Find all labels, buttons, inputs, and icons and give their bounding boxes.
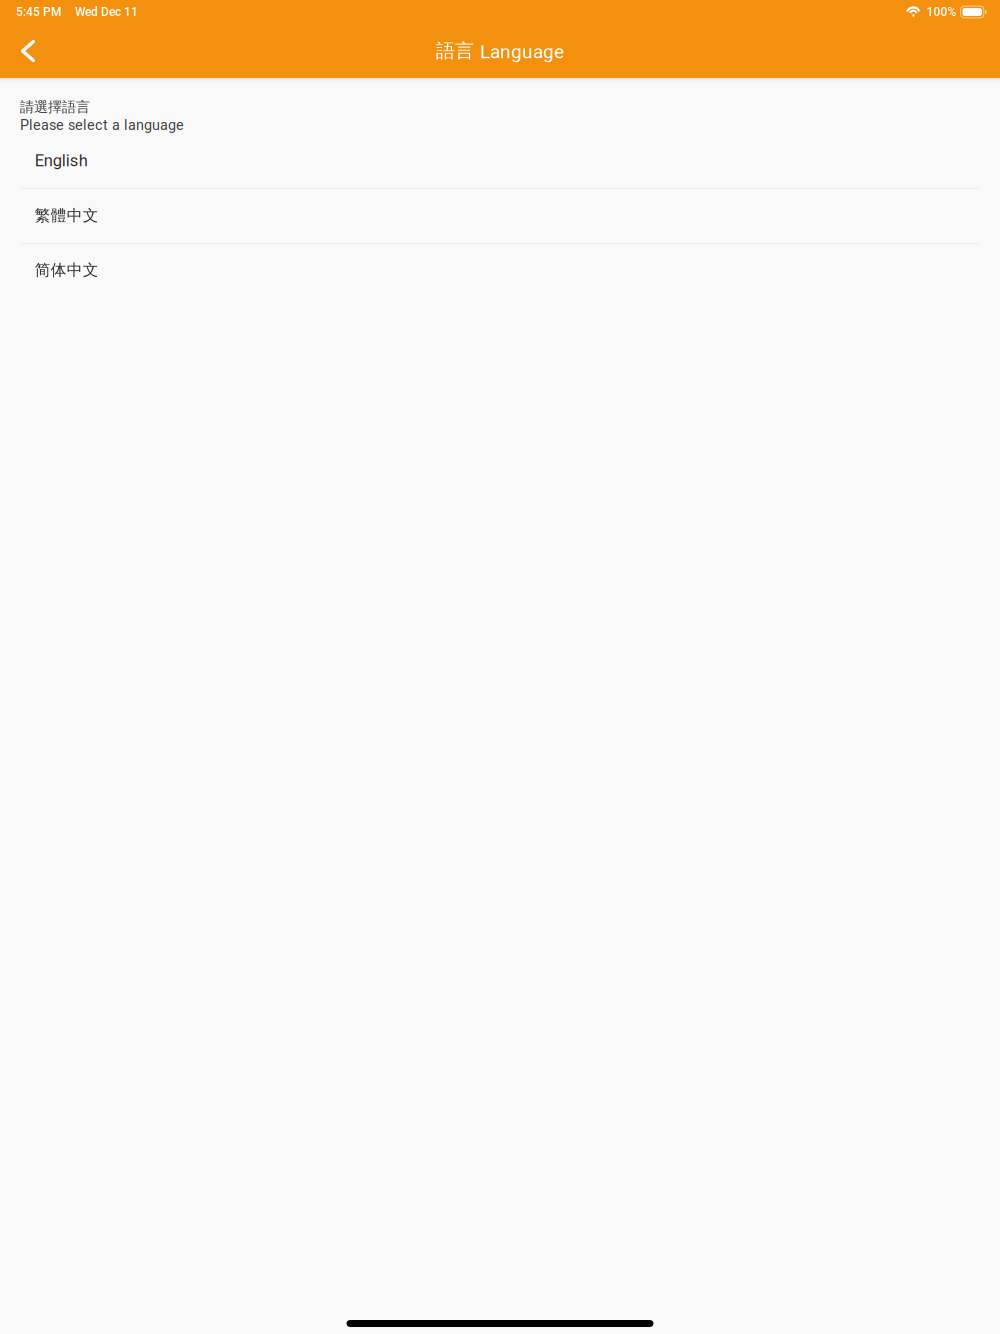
staticText: 100% xyxy=(927,5,957,19)
staticText: 5:45 PM xyxy=(16,5,61,19)
staticText: 简体中文 xyxy=(35,260,99,280)
staticText: 請選擇語言 xyxy=(20,98,90,116)
staticText: Wed Dec 11 xyxy=(75,5,138,19)
button[interactable]: 繁體中文 xyxy=(0,189,1000,243)
button[interactable]: English xyxy=(0,133,1000,188)
staticText: Please select a language xyxy=(20,117,184,134)
button[interactable]: Back xyxy=(0,28,62,74)
button[interactable]: 简体中文 xyxy=(0,244,1000,299)
staticText: 繁體中文 xyxy=(35,206,99,225)
staticText: 語言 Language xyxy=(436,39,564,63)
staticText: English xyxy=(35,151,88,170)
